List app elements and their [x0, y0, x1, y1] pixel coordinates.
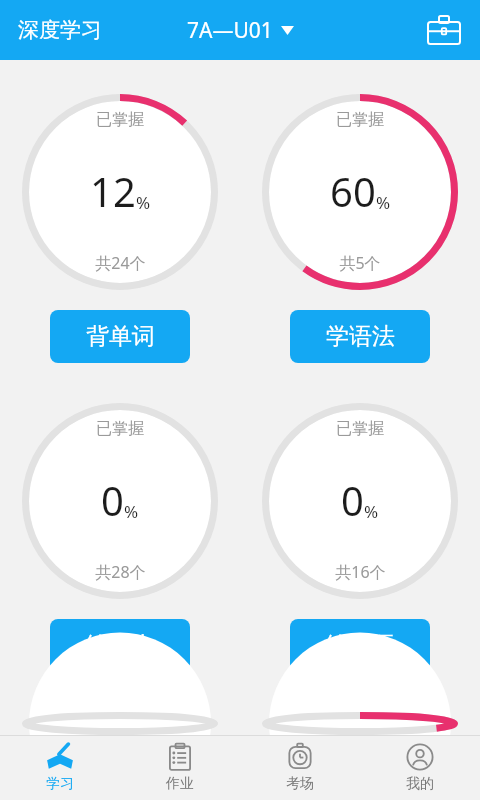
staticText: 7A—U01: [187, 16, 273, 45]
staticText: 60: [330, 164, 376, 218]
staticText: 作业: [166, 775, 194, 793]
staticText: 0: [101, 473, 124, 527]
button[interactable]: 背单词: [50, 310, 190, 363]
button[interactable]: 练口语: [290, 619, 430, 672]
button[interactable]: 7A—U01: [177, 10, 304, 51]
button[interactable]: 我的: [360, 736, 480, 800]
staticText: 学语法: [326, 322, 395, 351]
button[interactable]: 学语法: [290, 310, 430, 363]
staticText: 12: [90, 164, 136, 218]
staticText: 共5个: [339, 252, 381, 274]
button[interactable]: 作业: [120, 736, 240, 800]
staticText: 已掌握: [96, 419, 144, 439]
button[interactable]: Toolbox: [422, 8, 466, 52]
staticText: %: [364, 500, 379, 523]
staticText: 考场: [286, 775, 314, 793]
button[interactable]: 练听力: [50, 619, 190, 672]
staticText: 我的: [406, 775, 434, 793]
staticText: %: [376, 191, 391, 214]
button[interactable]: 学习: [0, 736, 120, 800]
staticText: 背单词: [86, 322, 155, 351]
staticText: 练听力: [86, 631, 155, 660]
staticText: 共24个: [95, 252, 146, 274]
staticText: %: [136, 191, 151, 214]
staticText: 深度学习: [18, 17, 102, 43]
staticText: %: [124, 500, 139, 523]
staticText: 共16个: [335, 561, 386, 583]
staticText: 已掌握: [336, 110, 384, 130]
staticText: 0: [341, 473, 364, 527]
button[interactable]: 考场: [240, 736, 360, 800]
staticText: 共28个: [95, 561, 146, 583]
staticText: 已掌握: [96, 110, 144, 130]
staticText: 学习: [46, 775, 74, 793]
staticText: 已掌握: [336, 419, 384, 439]
staticText: 练口语: [326, 631, 395, 660]
